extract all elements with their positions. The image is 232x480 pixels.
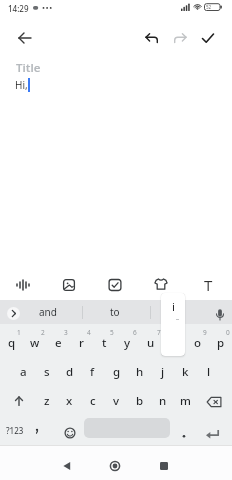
staticText: and [39, 305, 57, 319]
button[interactable]: g [105, 360, 128, 384]
staticText: 7 [157, 328, 161, 337]
staticText: 6 [133, 328, 137, 337]
button[interactable]: q [0, 331, 23, 355]
staticText: p [217, 335, 225, 351]
staticText: e [55, 335, 62, 351]
staticText: z [44, 393, 50, 409]
button[interactable] [170, 28, 190, 48]
staticText: Hi, [15, 78, 28, 92]
button[interactable]: j [151, 360, 174, 384]
button[interactable]: z [35, 389, 58, 413]
staticText: d [66, 364, 74, 380]
button[interactable]: w [23, 331, 46, 355]
staticText: v [113, 393, 120, 409]
button[interactable] [142, 28, 162, 48]
staticText: 5 [110, 328, 114, 337]
staticText: f [90, 364, 95, 380]
button[interactable]: h [128, 360, 151, 384]
button[interactable] [7, 307, 20, 320]
button[interactable]: and [28, 300, 68, 324]
button[interactable] [106, 457, 124, 475]
staticText: 14:29 [8, 3, 29, 14]
button[interactable]: e [47, 331, 70, 355]
staticText: T [204, 275, 213, 295]
button[interactable]: p [209, 331, 232, 355]
button[interactable]: x [58, 389, 81, 413]
staticText: 2 [41, 328, 45, 337]
button[interactable]: n [151, 389, 174, 413]
button[interactable]: s [35, 360, 58, 384]
button[interactable] [8, 389, 30, 413]
button[interactable]: r [70, 331, 93, 355]
staticText: to [110, 305, 120, 319]
button[interactable] [155, 457, 173, 475]
button[interactable]: k [174, 360, 197, 384]
button[interactable] [14, 27, 36, 49]
staticText: l [207, 364, 211, 380]
staticText: q [8, 335, 16, 351]
staticText: m [180, 393, 191, 409]
staticText: i [172, 299, 175, 315]
staticText: x [66, 393, 73, 409]
staticText: k [182, 364, 189, 380]
staticText: ?123 [6, 425, 24, 436]
button[interactable]: to [95, 300, 135, 324]
button[interactable] [60, 276, 78, 294]
staticText: y [124, 335, 131, 351]
button[interactable]: m [174, 389, 197, 413]
staticText: h [136, 364, 144, 380]
staticText: t [102, 335, 107, 351]
staticText: o [194, 335, 202, 351]
button[interactable]: c [81, 389, 104, 413]
button[interactable] [58, 457, 76, 475]
staticText: r [79, 335, 84, 351]
button[interactable] [152, 275, 170, 293]
staticText: 4 [87, 328, 91, 337]
button[interactable]: d [58, 360, 81, 384]
button[interactable]: f [81, 360, 104, 384]
staticText: w [30, 335, 40, 351]
staticText: 9 [203, 328, 207, 337]
button[interactable] [212, 306, 228, 324]
button[interactable]: l [197, 360, 220, 384]
button[interactable]: u [139, 331, 162, 355]
button[interactable]: o [186, 331, 209, 355]
button[interactable]: a [12, 360, 35, 384]
button[interactable] [201, 425, 225, 443]
button[interactable]: t [93, 331, 116, 355]
button[interactable] [202, 390, 226, 414]
staticText: g [113, 364, 121, 380]
button[interactable]: v [105, 389, 128, 413]
staticText: 1 [17, 328, 21, 337]
button[interactable] [29, 423, 45, 439]
staticText: b [136, 393, 144, 409]
button[interactable]: y [116, 331, 139, 355]
staticText: u [147, 335, 155, 351]
button[interactable]: T [198, 275, 218, 295]
staticText: 3 [64, 328, 68, 337]
staticText: 0 [226, 328, 230, 337]
staticText: a [20, 364, 27, 380]
button[interactable] [106, 276, 124, 294]
staticText: c [90, 393, 96, 409]
staticText: s [44, 364, 50, 380]
button[interactable] [176, 425, 192, 441]
button[interactable]: i [163, 331, 186, 355]
staticText: j [161, 364, 165, 380]
button[interactable] [198, 28, 218, 48]
button[interactable] [60, 423, 80, 443]
staticText: Title [16, 60, 41, 76]
staticText: 52 [206, 4, 212, 10]
staticText: n [159, 393, 167, 409]
button[interactable]: ?123 [1, 419, 29, 441]
button[interactable] [14, 276, 32, 294]
button[interactable]: b [128, 389, 151, 413]
